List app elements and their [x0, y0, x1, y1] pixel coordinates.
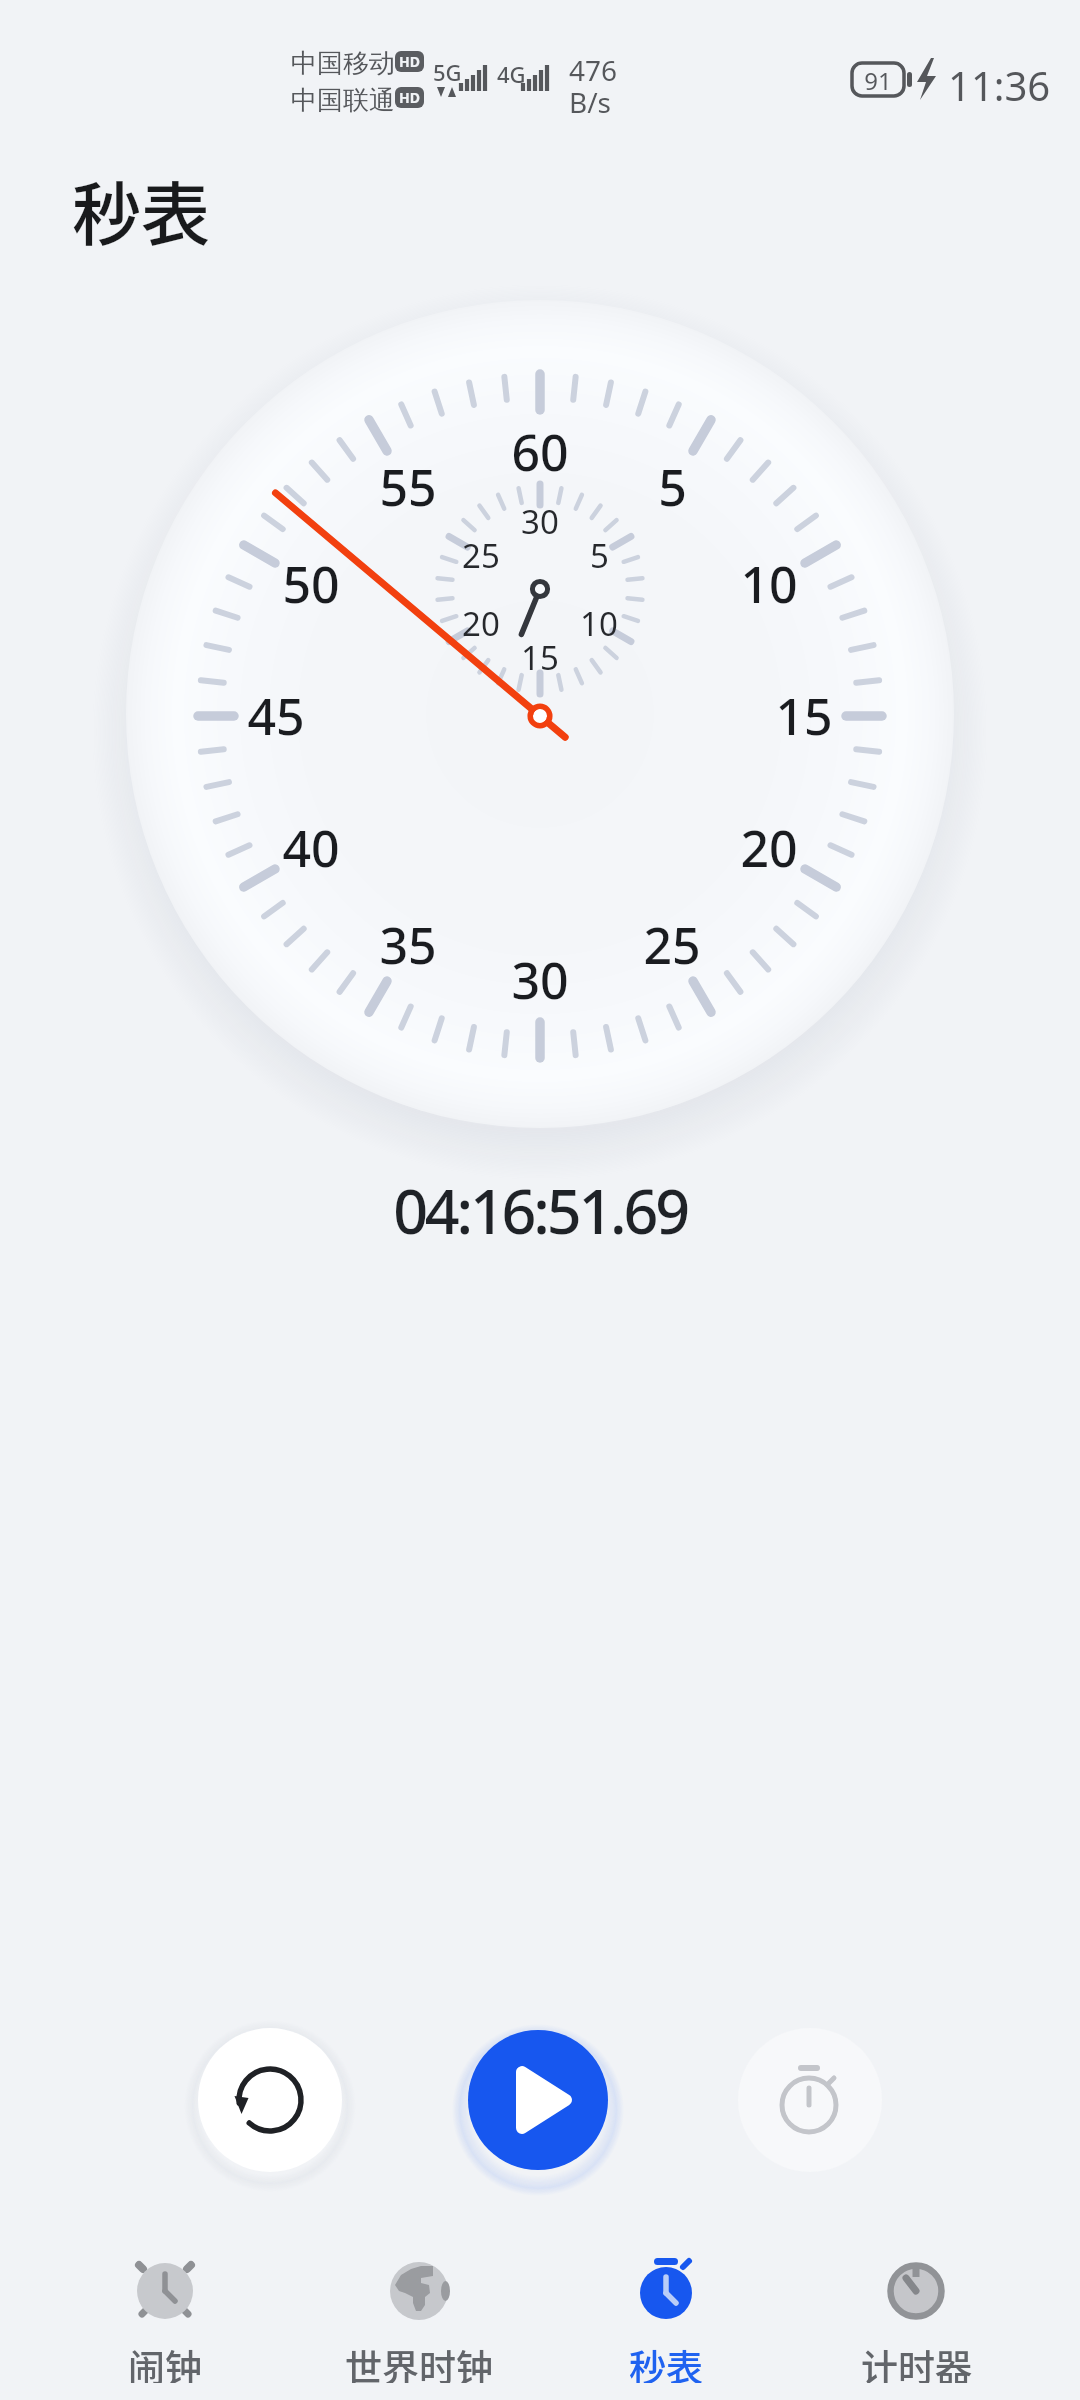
staticText: 30: [511, 946, 569, 1014]
staticText: 15: [775, 682, 833, 750]
staticText: 476: [569, 51, 618, 89]
staticText: 50: [282, 550, 340, 618]
button[interactable]: [468, 2030, 608, 2170]
staticText: 40: [282, 814, 340, 882]
staticText: 5G: [433, 57, 462, 87]
staticText: HD: [399, 88, 420, 107]
staticText: 4G: [497, 59, 526, 89]
staticText: 中国联通: [291, 84, 395, 117]
button[interactable]: [198, 2028, 342, 2172]
button[interactable]: 闹钟: [65, 2240, 265, 2390]
staticText: 60: [511, 418, 569, 486]
staticText: 55: [379, 453, 437, 521]
staticText: 10: [740, 550, 798, 618]
staticText: 30: [521, 499, 559, 544]
staticText: 中国移动: [291, 47, 395, 80]
staticText: B/s: [569, 83, 612, 121]
staticText: 35: [379, 911, 437, 979]
staticText: 20: [462, 601, 500, 646]
button[interactable]: 计时器: [816, 2240, 1016, 2390]
staticText: 世界时钟: [345, 2339, 493, 2383]
staticText: HD: [399, 52, 420, 71]
button[interactable]: 秒表: [566, 2240, 766, 2390]
staticText: 04:16:51.69: [393, 1169, 687, 1252]
button[interactable]: [738, 2028, 882, 2172]
staticText: 25: [643, 911, 701, 979]
staticText: 闹钟: [128, 2339, 202, 2383]
staticText: 5: [590, 533, 609, 578]
staticText: 秒表: [629, 2339, 703, 2383]
staticText: 10: [580, 601, 618, 646]
staticText: 秒表: [72, 160, 210, 260]
staticText: 11:36: [948, 58, 1051, 112]
staticText: 计时器: [861, 2339, 972, 2383]
button[interactable]: 世界时钟: [319, 2240, 519, 2390]
staticText: 20: [740, 814, 798, 882]
staticText: 25: [462, 533, 500, 578]
staticText: 91: [864, 64, 892, 97]
staticText: 45: [247, 682, 305, 750]
staticText: 5: [658, 453, 687, 521]
staticText: 15: [521, 635, 559, 680]
